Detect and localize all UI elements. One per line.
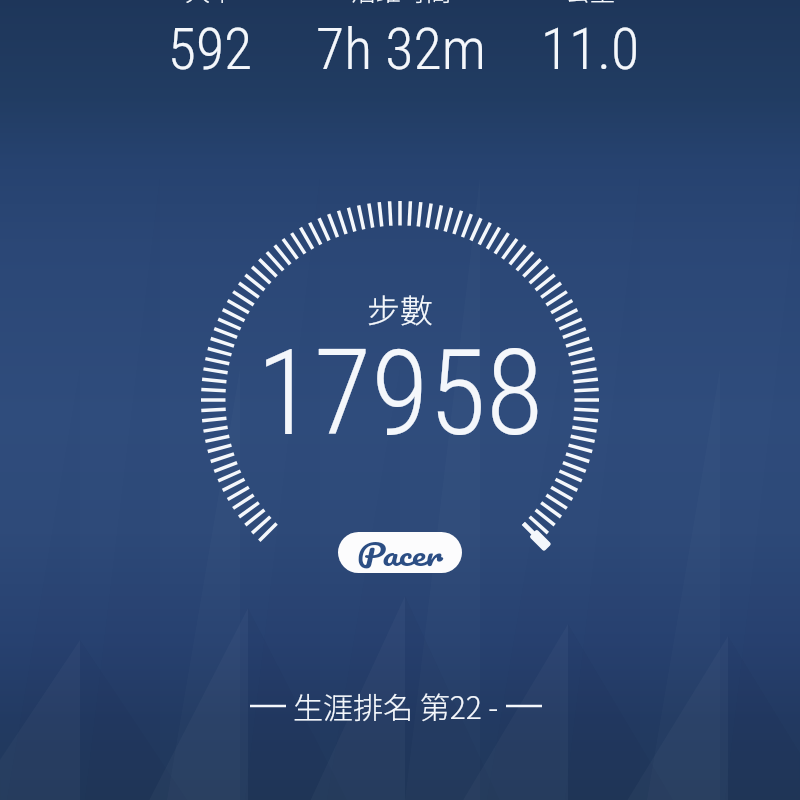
- staticText: 592: [50, 15, 370, 79]
- button[interactable]: 大卡: [90, 0, 330, 44]
- staticText: 7h 32m: [241, 15, 561, 79]
- staticText: Pacer: [357, 532, 444, 572]
- staticText: 11.0: [430, 15, 750, 79]
- staticText: 公里: [470, 0, 710, 44]
- button[interactable]: 公里: [470, 0, 710, 44]
- button[interactable]: 生涯排名 第22 -: [243, 684, 549, 728]
- staticText: 步數: [0, 285, 800, 800]
- staticText: 17958: [0, 325, 800, 800]
- button[interactable]: 步數 17958: [200, 200, 600, 600]
- button[interactable]: 活躍時間: [281, 0, 521, 44]
- staticText: 活躍時間: [281, 0, 521, 44]
- staticText: 大卡: [90, 0, 330, 44]
- button[interactable]: Pacer: [338, 532, 462, 573]
- staticText: 生涯排名 第22 -: [293, 684, 499, 727]
